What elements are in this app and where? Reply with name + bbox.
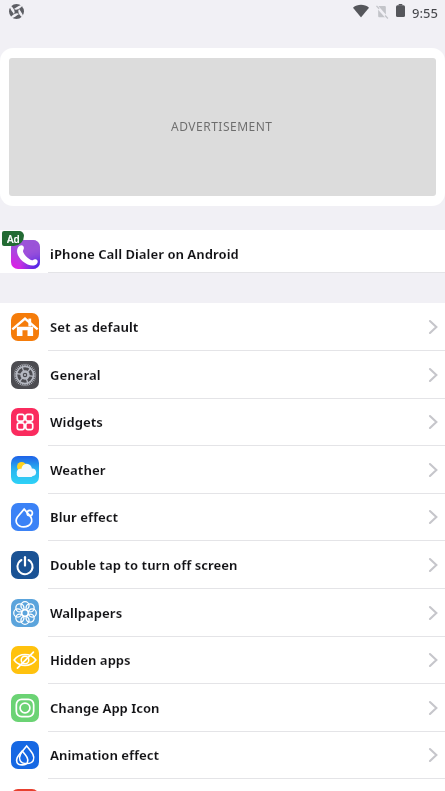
staticText: ADVERTISEMENT (171, 118, 273, 134)
button[interactable]: Animation effect (0, 731, 445, 779)
staticText: Widgets (50, 413, 103, 431)
staticText: Blur effect (50, 508, 119, 526)
staticText: 9:55 (412, 4, 438, 22)
staticText: Set as default (50, 318, 139, 336)
button[interactable]: Weather (0, 446, 445, 494)
other: Sync (9, 4, 24, 19)
staticText: Double tap to turn off screen (50, 556, 238, 574)
button[interactable]: Widgets (0, 398, 445, 446)
staticText: Change App Icon (50, 699, 160, 717)
staticText: General (50, 366, 101, 384)
button[interactable]: General (0, 351, 445, 399)
button[interactable]: Double tap to turn off screen (0, 541, 445, 589)
staticText: iPhone Call Dialer on Android (50, 245, 239, 263)
button[interactable]: Blur effect (0, 493, 445, 541)
button[interactable]: iPhone Call Dialer on Android (0, 230, 445, 273)
button[interactable]: Set as default (0, 303, 445, 351)
staticText: Animation effect (50, 746, 160, 764)
button[interactable]: Gestures (0, 779, 445, 791)
button[interactable]: Hidden apps (0, 636, 445, 684)
button[interactable]: Change App Icon (0, 684, 445, 732)
staticText: Weather (50, 461, 106, 479)
button[interactable]: Wallpapers (0, 589, 445, 637)
staticText: Ad (7, 232, 20, 246)
staticText: Hidden apps (50, 651, 131, 669)
staticText: Wallpapers (50, 604, 123, 622)
